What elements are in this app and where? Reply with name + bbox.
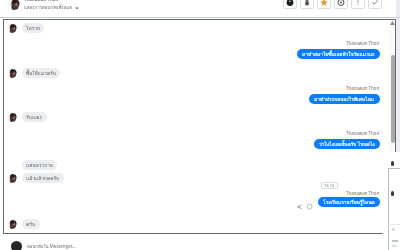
staticText: Thanawan Thon [346, 85, 380, 91]
button[interactable]: Reply [296, 203, 303, 210]
button[interactable]: Delete [300, 0, 314, 9]
staticText: ซื้อให้แมวครับ [26, 69, 56, 77]
staticText: Thanawan Thon [346, 40, 380, 46]
button[interactable]: Settings [334, 0, 348, 9]
button[interactable]: ครับ [22, 219, 40, 229]
staticText: มาทำประกอบอะไรพิเศษไหม [314, 95, 375, 103]
staticText: โรงเรียนรายเรียนรู้ไหนด [323, 198, 375, 206]
staticText: 13:12 [324, 183, 335, 188]
button[interactable]: Star [317, 0, 331, 9]
button[interactable]: Mark as done [368, 0, 382, 9]
button[interactable]: ว่าไงไงเลยงั้นครับ ไหนอไง [314, 139, 380, 149]
staticText: มาทำสมาใจขึ้นเลยหัวใจวัดแมวนะ [302, 50, 375, 58]
staticText: Thanawan Thon [24, 0, 59, 2]
button[interactable]: โรงเรียนรายเรียนรู้ไหนด [318, 197, 380, 207]
staticText: Thanawan Thon [346, 130, 380, 136]
staticText: แสดงการตอบกลับทั้งหมด [24, 4, 73, 11]
button[interactable]: มาทำประกอบอะไรพิเศษไหม [309, 94, 380, 104]
button[interactable]: ซื้อให้แมวครับ [22, 68, 60, 78]
button[interactable]: มาทำสมาใจขึ้นเลยหัวใจวัดแมวนะ [297, 49, 380, 59]
staticText: Thanawan Thon [346, 190, 380, 196]
staticText: รับเบอะ [26, 113, 43, 121]
button[interactable]: แม้วแล้วกดครับ [22, 173, 64, 183]
staticText: ไหราย [26, 24, 40, 32]
button[interactable]: แสนหว่ากาย [22, 160, 57, 170]
button[interactable]: ไหราย [22, 23, 44, 33]
button[interactable]: Information [283, 0, 297, 9]
button[interactable]: React [306, 203, 313, 210]
button[interactable]: รับเบอะ [22, 112, 47, 122]
staticText: แสนหว่ากาย [26, 161, 53, 169]
button[interactable]: แสดงการตอบกลับทั้งหมด [24, 4, 79, 11]
staticText: ตอบกลับใน Messenger... [27, 243, 76, 250]
staticText: ครับ [26, 220, 36, 228]
button[interactable]: Report [351, 0, 365, 9]
staticText: แม้วแล้วกดครับ [26, 174, 60, 182]
staticText: ว่าไงไงเลยงั้นครับ ไหนอไง [319, 140, 375, 148]
